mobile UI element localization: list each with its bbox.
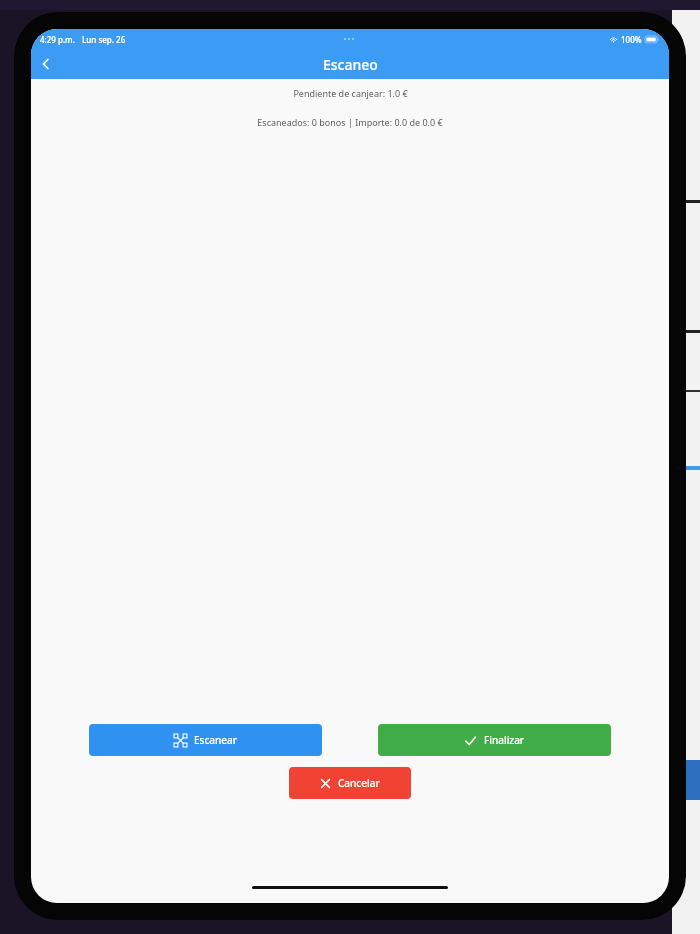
staticText: Pendiente de canjear: 1.0 € xyxy=(293,87,408,99)
staticText: Lun sep. 26 xyxy=(82,34,126,45)
button[interactable]: Cancelar xyxy=(289,767,411,799)
staticText: Escaneados: 0 bonos | Importe: 0.0 de 0.… xyxy=(257,116,443,128)
staticText: Finalizar xyxy=(484,733,525,747)
staticText: 100% xyxy=(621,34,642,45)
staticText: Escaneo xyxy=(323,55,378,74)
button[interactable]: Back xyxy=(31,49,61,79)
button[interactable]: Escanear xyxy=(89,724,322,756)
button[interactable]: Finalizar xyxy=(378,724,611,756)
staticText: 4:29 p.m. xyxy=(40,34,75,45)
staticText: Cancelar xyxy=(338,776,380,790)
staticText: Escanear xyxy=(194,733,238,747)
